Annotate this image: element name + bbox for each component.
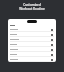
button[interactable]: Options: [9, 42, 55, 47]
button[interactable]: Options: [9, 37, 55, 42]
staticText: Workout Routine: [19, 7, 45, 11]
button[interactable]: Options: [9, 32, 55, 37]
staticText: Customized: [23, 3, 41, 7]
button[interactable]: Options: [9, 47, 55, 52]
button[interactable]: Options: [9, 52, 55, 57]
button[interactable]: Options: [9, 57, 55, 62]
button[interactable]: Options: [9, 27, 55, 32]
